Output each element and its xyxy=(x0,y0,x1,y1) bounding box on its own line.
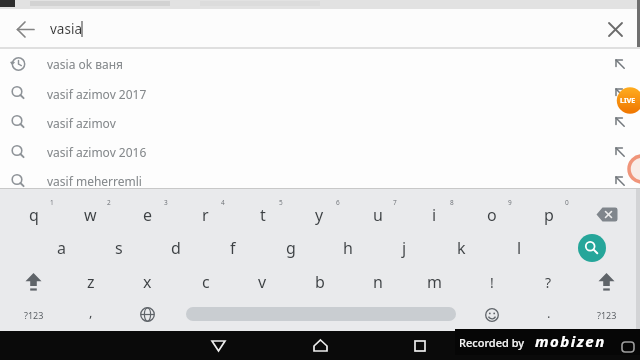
staticText: mobizen xyxy=(535,331,606,351)
staticText: y xyxy=(315,204,324,226)
staticText: 1 xyxy=(50,198,54,207)
button[interactable]: x xyxy=(119,265,176,299)
staticText: i xyxy=(432,204,437,226)
staticText: q xyxy=(29,204,39,226)
button[interactable]: w xyxy=(62,198,119,232)
button[interactable] xyxy=(609,53,631,75)
staticText: vasif azimov xyxy=(47,115,116,131)
button[interactable] xyxy=(609,141,631,163)
staticText: ! xyxy=(490,273,494,292)
staticText: e xyxy=(143,204,153,226)
button[interactable]: o xyxy=(463,198,520,232)
staticText: 6 xyxy=(336,198,340,207)
button[interactable] xyxy=(463,298,520,331)
button[interactable] xyxy=(609,170,631,192)
button[interactable]: z xyxy=(62,265,119,299)
staticText: u xyxy=(373,204,383,226)
staticText: r xyxy=(202,204,209,226)
button[interactable]: vasif azimov xyxy=(0,108,600,137)
button[interactable]: b xyxy=(291,265,348,299)
staticText: vasif azimov 2017 xyxy=(47,86,147,102)
staticText: vasif azimov 2016 xyxy=(47,144,147,160)
staticText: ?123 xyxy=(597,309,617,321)
staticText: m xyxy=(427,271,442,293)
staticText: 2 xyxy=(107,198,111,207)
staticText: p xyxy=(544,204,554,226)
staticText: 9 xyxy=(508,198,512,207)
button[interactable]: m xyxy=(406,265,463,299)
button[interactable] xyxy=(563,231,620,265)
staticText: 0 xyxy=(565,198,569,207)
button[interactable]: ! xyxy=(463,265,520,299)
button[interactable] xyxy=(202,333,234,358)
staticText: t xyxy=(260,204,266,226)
staticText: o xyxy=(487,204,497,226)
staticText: z xyxy=(87,271,95,293)
staticText: Recorded by xyxy=(459,335,525,350)
button[interactable]: u xyxy=(349,198,406,232)
staticText: LIVE xyxy=(620,96,636,106)
button[interactable]: a xyxy=(33,231,90,265)
button[interactable]: r xyxy=(177,198,234,232)
button[interactable] xyxy=(599,13,631,45)
button[interactable]: vasif azimov 2016 xyxy=(0,137,600,166)
staticText: vasia ok ваня xyxy=(47,56,124,72)
button[interactable]: . xyxy=(520,296,577,330)
button[interactable]: e xyxy=(119,198,176,232)
staticText: 7 xyxy=(393,198,397,207)
button[interactable] xyxy=(5,265,62,299)
button[interactable] xyxy=(404,333,436,358)
staticText: x xyxy=(143,271,152,293)
button[interactable]: vasif meherremli xyxy=(0,166,600,195)
button[interactable]: f xyxy=(204,231,261,265)
staticText: 8 xyxy=(450,198,454,207)
button[interactable]: n xyxy=(349,265,406,299)
button[interactable]: q xyxy=(5,198,62,232)
button[interactable]: ?123 xyxy=(578,298,635,331)
button[interactable] xyxy=(8,13,42,45)
staticText: l xyxy=(517,237,522,259)
button[interactable]: v xyxy=(234,265,291,299)
button[interactable]: s xyxy=(90,231,147,265)
button[interactable]: vasia ok ваня xyxy=(0,49,600,78)
button[interactable]: y xyxy=(291,198,348,232)
staticText: g xyxy=(286,237,296,259)
button[interactable]: h xyxy=(319,231,376,265)
button[interactable] xyxy=(609,111,631,133)
staticText: s xyxy=(115,237,123,259)
button[interactable]: p xyxy=(520,198,577,232)
button[interactable]: i xyxy=(406,198,463,232)
staticText: v xyxy=(258,271,267,293)
button[interactable]: t xyxy=(234,198,291,232)
button[interactable] xyxy=(119,298,176,331)
staticText: d xyxy=(171,237,181,259)
button[interactable]: , xyxy=(62,295,119,329)
button[interactable]: k xyxy=(433,231,490,265)
staticText: 3 xyxy=(164,198,168,207)
button[interactable]: l xyxy=(491,231,548,265)
staticText: 5 xyxy=(279,198,283,207)
staticText: ? xyxy=(545,273,552,292)
staticText: f xyxy=(230,237,236,259)
button[interactable] xyxy=(578,265,635,299)
staticText: , xyxy=(89,303,93,321)
staticText: c xyxy=(202,271,210,293)
button[interactable] xyxy=(609,82,631,104)
button[interactable] xyxy=(186,307,456,321)
staticText: 4 xyxy=(221,198,225,207)
staticText: a xyxy=(57,237,66,259)
staticText: n xyxy=(373,271,383,293)
button[interactable]: ? xyxy=(520,265,577,299)
button[interactable] xyxy=(578,197,635,231)
staticText: vasif meherremli xyxy=(47,173,142,189)
button[interactable]: ?123 xyxy=(5,298,62,331)
staticText: ?123 xyxy=(24,309,44,321)
button[interactable]: g xyxy=(262,231,319,265)
button[interactable]: d xyxy=(147,231,204,265)
staticText: j xyxy=(402,237,407,259)
button[interactable] xyxy=(304,333,336,358)
button[interactable]: vasif azimov 2017 xyxy=(0,79,600,108)
button[interactable]: j xyxy=(376,231,433,265)
staticText: b xyxy=(315,271,325,293)
button[interactable]: c xyxy=(177,265,234,299)
